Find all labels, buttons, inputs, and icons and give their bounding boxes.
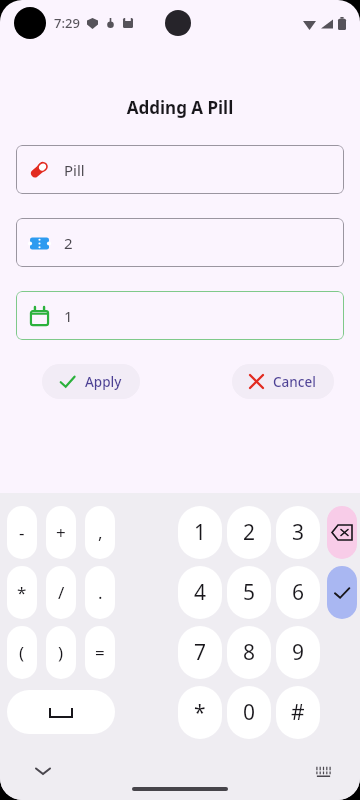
staticText: = <box>95 641 105 664</box>
staticText: 0 <box>243 698 256 727</box>
button[interactable]: + <box>46 506 76 559</box>
staticText: 6 <box>292 578 305 607</box>
button[interactable]: 5 <box>227 566 271 619</box>
button[interactable]: 4 <box>178 566 222 619</box>
staticText: 7 <box>194 638 207 667</box>
staticText: 2 <box>64 233 73 253</box>
button[interactable]: 2 <box>16 218 344 267</box>
button[interactable]: / <box>46 566 76 619</box>
button[interactable]: = <box>85 626 115 679</box>
staticText: / <box>58 581 65 604</box>
staticText: 1 <box>194 518 207 547</box>
staticText: - <box>19 521 25 544</box>
staticText: * <box>17 581 27 604</box>
button[interactable]: Cancel <box>232 364 334 399</box>
button[interactable]: Enter <box>327 566 357 619</box>
staticText: 5 <box>243 578 256 607</box>
staticText: Pill <box>64 160 85 180</box>
button[interactable]: Pill <box>16 145 344 194</box>
button[interactable]: 9 <box>276 626 320 679</box>
button[interactable]: Space <box>7 690 115 734</box>
button[interactable]: Change keyboard <box>308 756 338 786</box>
button[interactable]: 2 <box>227 506 271 559</box>
staticText: + <box>56 521 66 544</box>
button[interactable]: 1 <box>178 506 222 559</box>
staticText: * <box>194 698 206 727</box>
button[interactable]: 6 <box>276 566 320 619</box>
button[interactable]: Apply <box>42 364 140 399</box>
staticText: 9 <box>292 638 305 667</box>
button[interactable]: 0 <box>227 686 271 739</box>
staticText: ( <box>19 641 25 664</box>
staticText: 7:29 <box>54 14 80 32</box>
staticText: , <box>98 521 103 544</box>
button[interactable]: , <box>85 506 115 559</box>
button[interactable]: 8 <box>227 626 271 679</box>
button[interactable]: 7 <box>178 626 222 679</box>
button[interactable]: 3 <box>276 506 320 559</box>
staticText: ) <box>58 641 64 664</box>
staticText: Cancel <box>273 373 316 391</box>
button[interactable]: Backspace <box>327 506 357 559</box>
button[interactable]: * <box>178 686 222 739</box>
staticText: Apply <box>85 373 122 391</box>
button[interactable]: ) <box>46 626 76 679</box>
staticText: 3 <box>292 518 305 547</box>
button[interactable]: 1 <box>16 291 344 340</box>
staticText: 4 <box>194 578 207 607</box>
button[interactable]: ( <box>7 626 37 679</box>
button[interactable]: - <box>7 506 37 559</box>
staticText: 2 <box>243 518 256 547</box>
button[interactable]: . <box>85 566 115 619</box>
staticText: 1 <box>64 306 73 326</box>
staticText: 8 <box>243 638 256 667</box>
button[interactable]: # <box>276 686 320 739</box>
button[interactable]: * <box>7 566 37 619</box>
staticText: . <box>98 581 103 604</box>
staticText: Adding A Pill <box>0 96 360 119</box>
button[interactable]: Hide keyboard <box>28 756 58 786</box>
staticText: # <box>291 698 305 727</box>
